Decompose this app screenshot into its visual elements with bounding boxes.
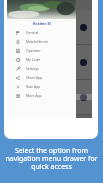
button[interactable]: Operator	[7, 46, 76, 55]
button[interactable]: My Code	[7, 55, 76, 64]
button[interactable]: Share App	[7, 73, 76, 82]
staticText: Operator	[26, 48, 41, 53]
button[interactable]: Rate App	[7, 82, 76, 91]
staticText: Share App	[26, 75, 43, 80]
staticText: My Code	[26, 57, 40, 62]
button[interactable]: Settings	[7, 64, 76, 73]
staticText: Mobile/device	[26, 39, 49, 44]
staticText: General	[26, 30, 39, 35]
button[interactable]: More App	[7, 91, 76, 100]
staticText: a p p a d l a u n c h p a d	[29, 95, 71, 100]
button[interactable]: General	[7, 28, 76, 37]
staticText: Select the option from navigation menu d…	[0, 146, 103, 171]
staticText: Rate App	[26, 84, 41, 89]
button[interactable]	[7, 10, 92, 45]
staticText: More App	[26, 93, 42, 98]
button[interactable]	[7, 45, 92, 80]
staticText: Settings	[26, 66, 39, 71]
button[interactable]	[7, 80, 92, 115]
staticText: Realme 3E	[33, 21, 52, 26]
button[interactable]: Mobile/device	[7, 37, 76, 46]
